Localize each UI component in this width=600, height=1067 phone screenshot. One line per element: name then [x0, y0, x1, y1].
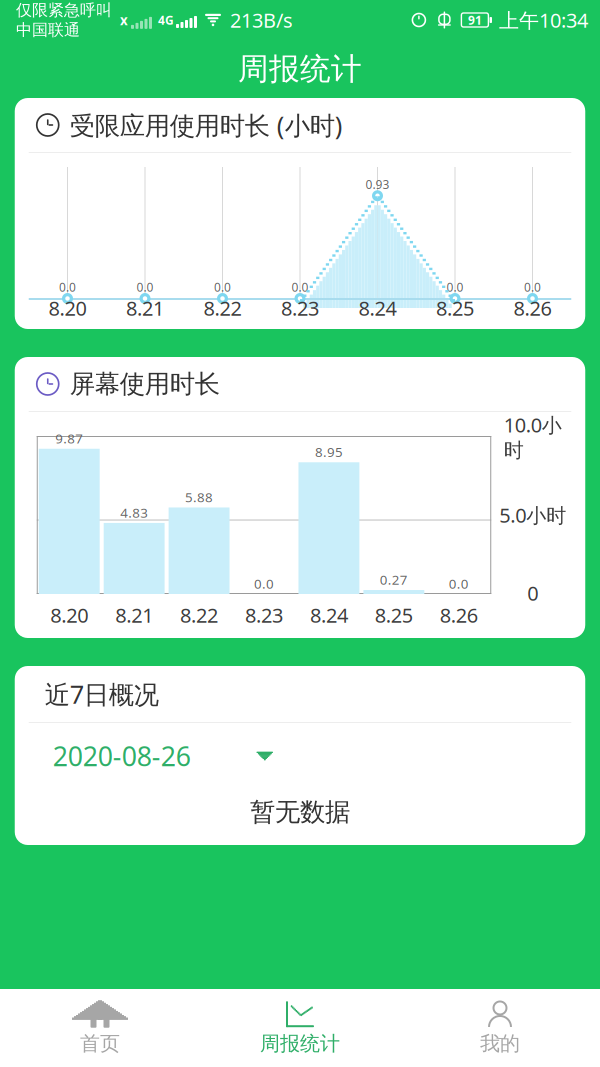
button[interactable]: 周报统计 — [200, 989, 400, 1067]
staticText: 我的 — [480, 1031, 520, 1056]
staticText: 首页 — [80, 1031, 120, 1056]
staticText: 受限应用使用时长 (小时) — [70, 108, 343, 142]
staticText: x — [120, 11, 128, 29]
staticText: 0.0 — [214, 279, 231, 295]
staticText: 8.24 — [310, 602, 348, 628]
staticText: 2020-08-26 — [53, 738, 191, 774]
staticText: 9.87 — [55, 429, 83, 447]
staticText: 0 — [527, 580, 538, 606]
staticText: 213B/s — [230, 7, 293, 33]
staticText: 5.88 — [185, 488, 213, 506]
button[interactable]: 2020-08-26 — [15, 723, 585, 789]
staticText: 0.0 — [291, 279, 308, 295]
staticText: 上午10:34 — [499, 7, 588, 33]
staticText: 8.21 — [126, 295, 164, 321]
staticText: 8.24 — [358, 295, 396, 321]
staticText: 中国联通 — [16, 20, 80, 40]
staticText: 0.27 — [380, 571, 408, 588]
staticText: 5.0小时 — [499, 502, 566, 528]
staticText: 0.0 — [524, 279, 541, 295]
staticText: 0.0 — [136, 279, 153, 295]
staticText: 8.22 — [203, 295, 241, 321]
staticText: 8.21 — [115, 602, 153, 628]
staticText: 8.26 — [440, 602, 478, 628]
staticText: 0.0 — [449, 575, 469, 592]
button[interactable]: 首页 — [0, 989, 200, 1067]
staticText: 4G — [158, 12, 174, 28]
staticText: 0.0 — [59, 279, 76, 295]
staticText: 8.23 — [281, 295, 319, 321]
staticText: 暂无数据 — [250, 796, 350, 827]
staticText: 8.23 — [245, 602, 283, 628]
staticText: 0.93 — [365, 176, 389, 192]
staticText: 8.95 — [315, 443, 343, 461]
button[interactable]: 我的 — [400, 989, 600, 1067]
staticText: 0.0 — [446, 279, 463, 295]
staticText: 近7日概况 — [45, 677, 159, 711]
staticText: 屏幕使用时长 — [70, 368, 220, 399]
staticText: 周报统计 — [260, 1031, 340, 1056]
staticText: 10.0小时 — [504, 411, 562, 462]
staticText: 8.26 — [513, 295, 551, 321]
staticText: 8.25 — [375, 602, 413, 628]
staticText: 周报统计 — [238, 50, 362, 88]
staticText: 仅限紧急呼叫 — [16, 0, 112, 20]
staticText: 8.20 — [50, 602, 88, 628]
staticText: 8.25 — [436, 295, 474, 321]
staticText: 0.0 — [254, 575, 274, 592]
staticText: 4.83 — [120, 504, 148, 521]
staticText: 8.22 — [180, 602, 218, 628]
staticText: 91 — [468, 12, 482, 28]
staticText: 8.20 — [48, 295, 86, 321]
